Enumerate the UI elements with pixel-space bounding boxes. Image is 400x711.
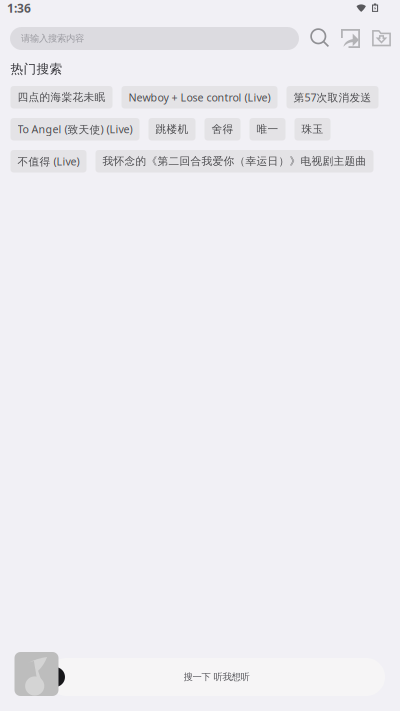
staticText: 第57次取消发送: [293, 90, 371, 104]
button[interactable]: 四点的海棠花未眠: [10, 86, 112, 108]
button[interactable]: Search: [310, 28, 329, 47]
staticText: To Angel (致天使) (Live): [17, 122, 132, 136]
button[interactable]: 舍得: [204, 118, 240, 140]
button[interactable]: 珠玉: [294, 118, 330, 140]
staticText: 唯一: [256, 123, 278, 136]
staticText: 珠玉: [301, 123, 323, 136]
staticText: 请输入搜索内容: [21, 33, 84, 44]
button[interactable]: Newboy + Lose control (Live): [121, 86, 277, 108]
button[interactable]: To Angel (致天使) (Live): [10, 118, 139, 140]
staticText: 跳楼机: [155, 123, 188, 136]
staticText: 舍得: [211, 123, 233, 136]
button[interactable]: Share: [341, 29, 360, 48]
staticText: 1:36: [7, 0, 31, 16]
button[interactable]: 搜一下 听我想听: [48, 658, 385, 696]
button[interactable]: 跳楼机: [148, 118, 195, 140]
button[interactable]: Downloads: [372, 30, 391, 46]
staticText: 不值得 (Live): [17, 154, 79, 168]
staticText: 热门搜索: [10, 61, 62, 77]
staticText: Newboy + Lose control (Live): [128, 90, 270, 104]
staticText: 四点的海棠花未眠: [17, 91, 105, 104]
button[interactable]: Now playing artwork: [14, 652, 58, 696]
button[interactable]: 我怀念的《第二回合我爱你（幸运日）》电视剧主题曲: [95, 150, 373, 172]
button[interactable]: 唯一: [249, 118, 285, 140]
button[interactable]: 第57次取消发送: [286, 86, 378, 108]
staticText: 我怀念的《第二回合我爱你（幸运日）》电视剧主题曲: [102, 155, 366, 168]
staticText: 搜一下 听我想听: [183, 671, 249, 683]
button[interactable]: 不值得 (Live): [10, 150, 86, 172]
